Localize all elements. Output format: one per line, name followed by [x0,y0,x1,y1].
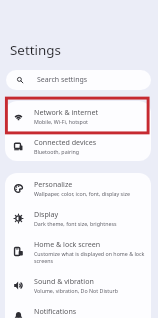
button[interactable]: Connected devices [5,131,151,161]
button[interactable]: Display [5,203,151,233]
staticText: Home & lock screen [34,239,101,249]
staticText: Search settings [37,75,88,85]
staticText: Notifications [34,306,77,316]
staticText: Customize what is displayed on home & lo… [34,250,146,264]
button[interactable]: Home & lock screen [5,233,151,270]
staticText: Connected devices [34,137,97,147]
staticText: Network & internet [34,107,99,117]
staticText: Display [34,209,59,219]
button[interactable]: Search settings [6,70,151,90]
staticText: Volume, vibration, Do Not Disturb [34,287,118,294]
button[interactable]: Sound & vibration [5,270,151,300]
staticText: Mobile, Wi-Fi, hotspot [34,118,88,125]
staticText: Bluetooth, pairing [34,148,80,155]
staticText: Personalize [34,179,73,189]
staticText: Settings [10,41,61,59]
button[interactable]: Notifications [5,300,151,318]
button[interactable]: Network & internet [5,101,151,131]
staticText: Sound & vibration [34,276,94,286]
staticText: Wallpaper, color, icon, font, display si… [34,190,131,197]
staticText: Dark theme, font size, brightness [34,220,117,227]
button[interactable]: Personalize [5,173,151,203]
